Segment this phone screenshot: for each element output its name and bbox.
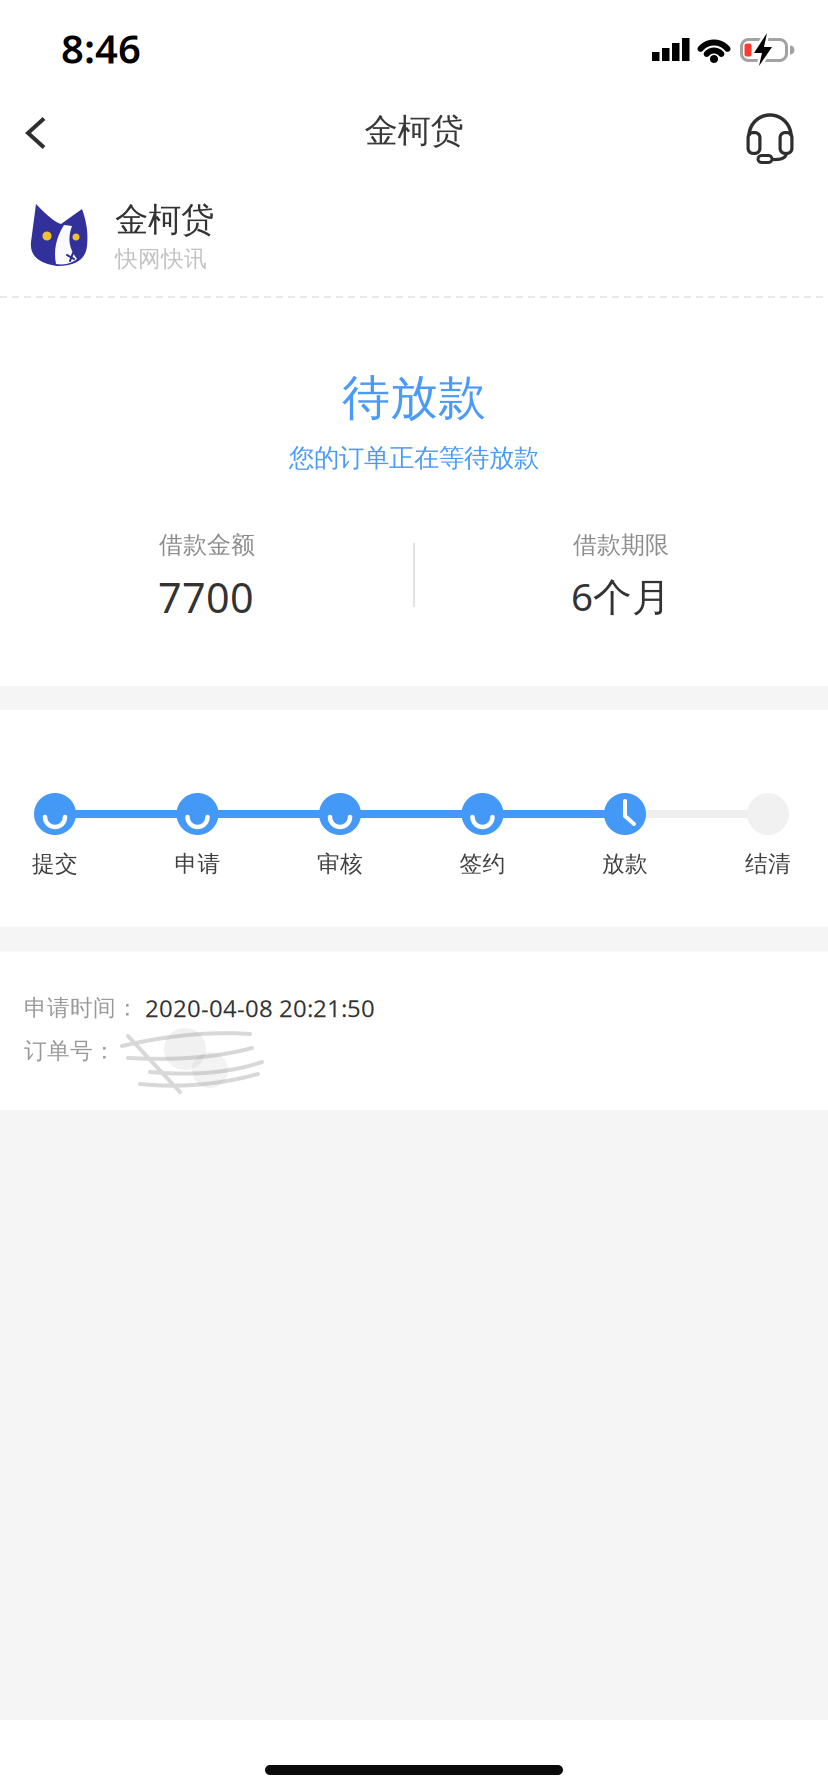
staticText: 7700: [158, 570, 254, 624]
staticText: 签约: [459, 850, 505, 878]
staticText: 借款金额: [159, 530, 255, 560]
staticText: 金柯贷: [115, 199, 214, 240]
staticText: 审核: [317, 850, 363, 878]
staticText: 申请时间：: [24, 994, 139, 1022]
staticText: 订单号：: [24, 1037, 116, 1065]
staticText: 结清: [745, 850, 791, 878]
staticText: 2020-04-08 20:21:50: [145, 992, 375, 1024]
staticText: 待放款: [342, 368, 486, 427]
staticText: 借款期限: [573, 530, 669, 560]
staticText: 6个月: [571, 570, 671, 622]
staticText: 放款: [602, 850, 648, 878]
staticText: 快网快讯: [115, 245, 207, 273]
button[interactable]: [20, 112, 64, 153]
staticText: 申请: [174, 850, 220, 878]
button[interactable]: [740, 104, 800, 164]
button[interactable]: 金柯贷: [0, 178, 828, 288]
staticText: 8:46: [61, 21, 141, 74]
staticText: 提交: [32, 850, 78, 878]
staticText: 您的订单正在等待放款: [289, 442, 539, 473]
staticText: 金柯贷: [364, 110, 463, 151]
